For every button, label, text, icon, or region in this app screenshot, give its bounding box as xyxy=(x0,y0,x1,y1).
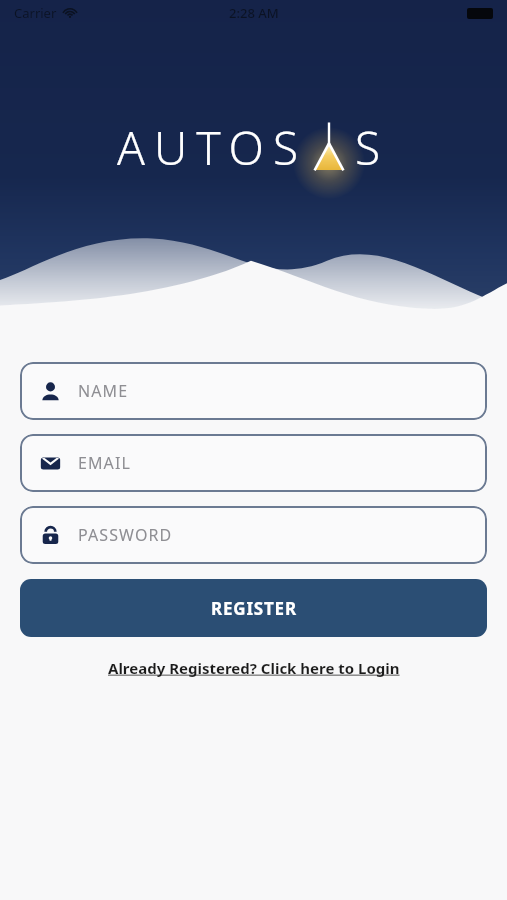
button[interactable]: EMAIL xyxy=(20,434,487,492)
staticText: EMAIL xyxy=(78,452,131,474)
staticText: Already Registered? Click here to Login xyxy=(108,658,400,678)
staticText: PASSWORD xyxy=(78,524,173,546)
staticText: AUTOS xyxy=(117,116,307,179)
button[interactable]: REGISTER xyxy=(20,579,487,637)
button[interactable]: PASSWORD xyxy=(20,506,487,564)
staticText: REGISTER xyxy=(211,597,297,620)
button[interactable]: Already Registered? Click here to Login xyxy=(98,654,410,682)
staticText: 2:28 AM xyxy=(229,4,279,22)
staticText: S xyxy=(355,116,390,179)
staticText: NAME xyxy=(78,380,129,402)
staticText: Carrier xyxy=(14,4,57,22)
button[interactable]: NAME xyxy=(20,362,487,420)
